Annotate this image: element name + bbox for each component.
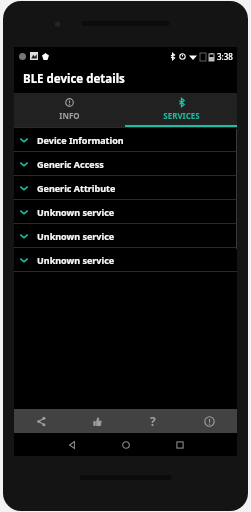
button[interactable]: SERVICES (125, 93, 237, 127)
staticText: SERVICES (163, 110, 200, 121)
button[interactable]: Unknown service (14, 223, 237, 247)
staticText: Device Information (37, 134, 124, 146)
button[interactable]: Generic Attribute (14, 175, 237, 199)
button[interactable]: Back (45, 433, 99, 456)
staticText: Generic Access (37, 158, 104, 170)
button[interactable]: Home (99, 433, 153, 456)
button[interactable]: INFO (14, 93, 125, 127)
staticText: Unknown service (37, 230, 115, 242)
button[interactable]: About (181, 409, 237, 433)
staticText: 3:38 (217, 51, 233, 62)
button[interactable]: Device Information (14, 127, 237, 151)
staticText: BLE device details (23, 71, 125, 87)
button[interactable]: Rate (69, 409, 125, 433)
button[interactable]: Recents (153, 433, 207, 456)
staticText: INFO (59, 110, 80, 121)
staticText: Unknown service (37, 254, 115, 266)
button[interactable]: Unknown service (14, 199, 237, 223)
staticText: Unknown service (37, 206, 115, 218)
staticText: Generic Attribute (37, 182, 116, 194)
button[interactable]: Share (14, 409, 69, 433)
button[interactable]: Help (125, 409, 181, 433)
staticText: ? (150, 413, 156, 429)
button[interactable]: Generic Access (14, 151, 237, 175)
button[interactable]: Unknown service (14, 247, 237, 271)
